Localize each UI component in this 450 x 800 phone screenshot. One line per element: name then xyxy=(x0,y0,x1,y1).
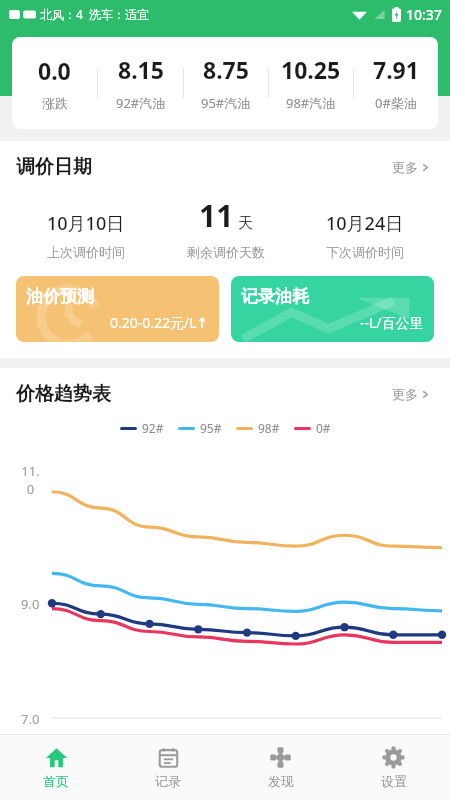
staticText: 记录油耗 xyxy=(241,286,309,307)
button[interactable]: 发现 xyxy=(224,734,337,800)
staticText: 10:37 xyxy=(406,5,442,24)
staticText: 10月24日 xyxy=(326,211,404,236)
button[interactable]: 更多 xyxy=(388,382,434,406)
staticText: 价格趋势表 xyxy=(16,382,111,406)
staticText: 油价预测 xyxy=(26,286,94,307)
staticText: 9.0 xyxy=(21,595,40,613)
staticText: 下次调价时间 xyxy=(326,244,404,260)
staticText: 7.91 xyxy=(373,54,419,85)
staticText: 涨跌 xyxy=(42,95,68,111)
staticText: 8.15 xyxy=(118,54,164,85)
staticText: 调价日期 xyxy=(16,155,92,179)
staticText: 92# xyxy=(142,420,164,436)
staticText: --L/百公里 xyxy=(360,313,424,332)
button[interactable]: 记录 xyxy=(112,734,224,800)
button[interactable]: 首页 xyxy=(0,734,112,800)
staticText: 11 xyxy=(199,195,234,236)
staticText: 98#汽油 xyxy=(286,94,336,112)
staticText: 更多 xyxy=(392,159,418,175)
staticText: 设置 xyxy=(381,773,407,789)
staticText: 北风：4 洗车：适宜 xyxy=(40,6,150,22)
staticText: 0# xyxy=(316,420,331,436)
staticText: 8.75 xyxy=(203,54,249,85)
staticText: 上次调价时间 xyxy=(47,244,125,260)
staticText: 天 xyxy=(238,214,253,233)
staticText: 0#柴油 xyxy=(375,94,417,112)
button[interactable]: 记录油耗 xyxy=(231,276,434,342)
staticText: 剩余调价天数 xyxy=(187,244,265,260)
staticText: 记录 xyxy=(155,773,181,789)
staticText: 0.20-0.22元/L↑ xyxy=(110,313,209,332)
staticText: 95#汽油 xyxy=(201,94,251,112)
staticText: 首页 xyxy=(43,773,69,789)
staticText: 0.0 xyxy=(38,55,71,86)
button[interactable]: 设置 xyxy=(337,734,450,800)
staticText: 更多 xyxy=(392,386,418,402)
staticText: 10月10日 xyxy=(47,211,125,236)
staticText: 95# xyxy=(200,420,222,436)
staticText: 发现 xyxy=(268,773,294,789)
staticText: 92#汽油 xyxy=(116,94,166,112)
staticText: 10.25 xyxy=(281,54,341,85)
button[interactable]: 油价预测 xyxy=(16,276,219,342)
staticText: 11. 0 xyxy=(21,462,40,498)
staticText: 98# xyxy=(258,420,280,436)
button[interactable]: 更多 xyxy=(388,155,434,179)
button[interactable]: 0.0 xyxy=(12,37,438,129)
staticText: 7.0 xyxy=(21,710,40,728)
